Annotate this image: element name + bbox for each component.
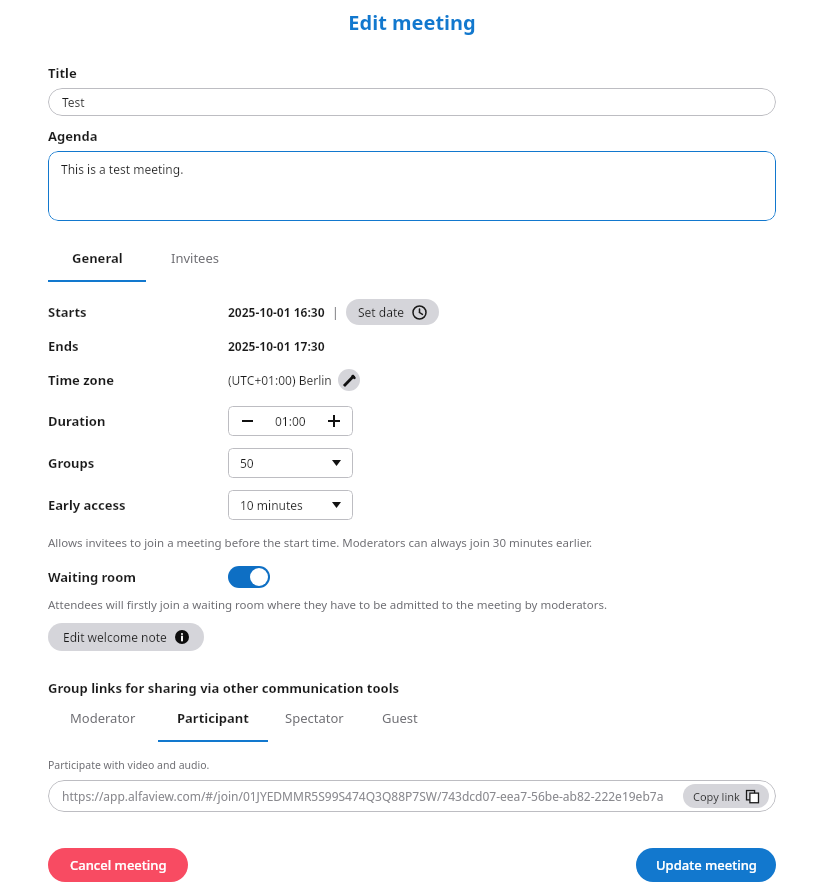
staticText: Duration	[48, 412, 106, 430]
staticText: Participate with video and audio.	[48, 758, 210, 772]
staticText: Groups	[48, 454, 95, 472]
staticText: 2025-10-01 16:30	[228, 304, 325, 320]
button[interactable]: Moderator	[48, 703, 158, 742]
staticText: Update meeting	[656, 856, 757, 874]
button[interactable]: Spectator	[268, 703, 360, 742]
staticText: Time zone	[48, 371, 114, 389]
button[interactable]: Edit time zone	[338, 369, 360, 391]
button[interactable]: Invitees	[146, 243, 244, 282]
button[interactable]: Guest	[360, 703, 440, 742]
button[interactable]: Cancel meeting	[48, 848, 188, 882]
button[interactable]: This is a test meeting.	[48, 151, 776, 221]
staticText: https://app.alfaview.com/#/join/01JYEDMM…	[62, 788, 664, 804]
staticText: 10 minutes	[240, 497, 303, 513]
staticText: Edit welcome note	[63, 629, 167, 645]
button[interactable]: https://app.alfaview.com/#/join/01JYEDMM…	[48, 780, 776, 812]
staticText: Allows invitees to join a meeting before…	[48, 535, 593, 551]
staticText: Moderator	[70, 709, 136, 727]
button[interactable]: Copy link	[683, 784, 769, 808]
staticText: Waiting room	[48, 568, 137, 586]
button[interactable]: Increase	[327, 414, 341, 428]
staticText: Attendees will firstly join a waiting ro…	[48, 597, 608, 613]
button[interactable]: Test	[48, 88, 776, 116]
staticText: Title	[48, 64, 77, 82]
button[interactable]: Waiting room toggle	[228, 566, 270, 588]
button[interactable]: Decrease	[240, 414, 254, 428]
staticText: Invitees	[171, 249, 219, 267]
button[interactable]: Set date	[346, 299, 439, 325]
staticText: This is a test meeting.	[61, 161, 184, 177]
button[interactable]: Update meeting	[636, 848, 776, 882]
staticText: 50	[240, 455, 254, 471]
staticText: Spectator	[285, 709, 344, 727]
button[interactable]: Participant	[158, 703, 268, 742]
staticText: 2025-10-01 17:30	[228, 338, 325, 354]
staticText: Agenda	[48, 127, 98, 145]
staticText: Ends	[48, 337, 79, 355]
staticText: Test	[62, 94, 85, 110]
button[interactable]: Edit welcome note	[48, 623, 204, 651]
staticText: Group links for sharing via other commun…	[48, 679, 400, 697]
staticText: Participant	[177, 709, 249, 727]
staticText: Copy link	[693, 789, 740, 804]
staticText: 01:00	[275, 413, 306, 429]
staticText: |	[332, 304, 339, 320]
staticText: Set date	[358, 304, 405, 320]
staticText: Starts	[48, 303, 87, 321]
staticText: Guest	[382, 709, 418, 727]
button[interactable]: 10 minutes	[228, 490, 353, 520]
staticText: (UTC+01:00) Berlin	[228, 372, 332, 388]
staticText: General	[72, 249, 123, 267]
button[interactable]: General	[48, 243, 146, 282]
button[interactable]: 50	[228, 448, 353, 478]
staticText: Edit meeting	[348, 9, 476, 36]
staticText: Cancel meeting	[70, 856, 167, 874]
staticText: Early access	[48, 496, 126, 514]
button[interactable]: Decrease	[228, 406, 353, 436]
